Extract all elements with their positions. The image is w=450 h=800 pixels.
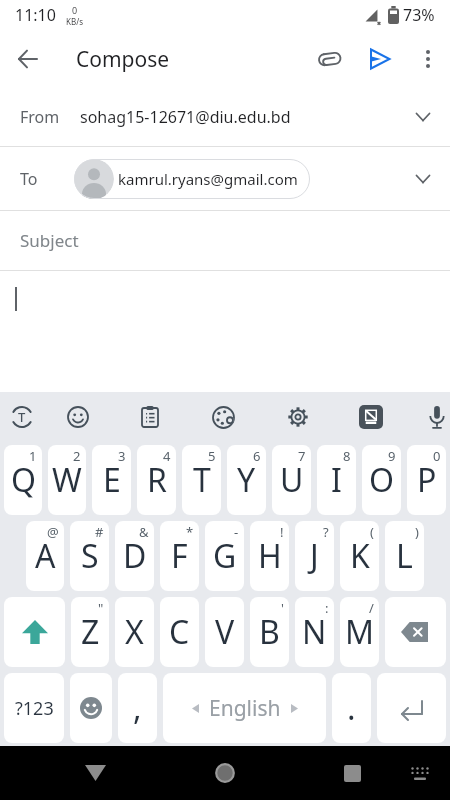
button[interactable]: I (317, 445, 356, 515)
staticText: " (98, 599, 104, 617)
button[interactable] (284, 403, 312, 431)
button[interactable] (70, 673, 112, 743)
button[interactable] (306, 35, 354, 83)
button[interactable]: S (70, 521, 109, 591)
staticText: 8 (343, 447, 351, 465)
staticText: @ (47, 523, 59, 541)
button[interactable] (423, 403, 450, 431)
button[interactable]: X (115, 597, 154, 667)
staticText: Subject (20, 229, 79, 252)
button[interactable]: Q (4, 445, 42, 515)
button[interactable]: F (160, 521, 199, 591)
button[interactable]: Y (227, 445, 266, 515)
staticText: 7 (298, 447, 306, 465)
staticText: kamrul.ryans@gmail.com (118, 169, 298, 189)
button[interactable]: P (407, 445, 446, 515)
button[interactable] (0, 31, 56, 87)
staticText: . (347, 686, 356, 730)
button[interactable]: English (163, 673, 326, 743)
staticText: , (133, 686, 142, 730)
staticText: B (259, 610, 280, 654)
staticText: From (20, 106, 60, 128)
button[interactable]: M (340, 597, 379, 667)
button[interactable] (377, 673, 446, 743)
staticText: P (417, 458, 437, 502)
staticText: 2 (73, 447, 81, 465)
button[interactable] (211, 759, 239, 787)
staticText: English (209, 694, 281, 723)
button[interactable]: D (115, 521, 154, 591)
button[interactable] (406, 37, 450, 81)
staticText: K (350, 534, 370, 578)
staticText: KB/s (66, 16, 83, 27)
button[interactable] (64, 403, 92, 431)
button[interactable] (209, 403, 237, 431)
staticText: U (280, 458, 304, 502)
button[interactable] (385, 597, 446, 667)
staticText: C (169, 610, 190, 654)
staticText: 1 (29, 447, 37, 465)
staticText: T (18, 408, 26, 426)
button[interactable]: W (48, 445, 86, 515)
staticText: To (20, 168, 38, 190)
button[interactable]: kamrul.ryans@gmail.com (74, 159, 310, 199)
staticText: M (345, 610, 375, 654)
button[interactable]: V (205, 597, 244, 667)
button[interactable]: Z (71, 597, 109, 667)
button[interactable] (4, 597, 65, 667)
staticText: R (147, 458, 167, 502)
button[interactable] (81, 759, 109, 787)
button[interactable]: N (295, 597, 334, 667)
staticText: 4 (163, 447, 171, 465)
button[interactable]: To (0, 147, 450, 210)
staticText: - (234, 523, 239, 541)
button[interactable]: C (160, 597, 199, 667)
staticText: ) (415, 523, 419, 541)
button[interactable]: T (182, 445, 221, 515)
button[interactable]: J (295, 521, 334, 591)
staticText: 0 (72, 4, 78, 16)
staticText: Y (237, 458, 256, 502)
staticText: E (103, 458, 121, 502)
staticText: X (125, 610, 144, 654)
staticText: 3 (118, 447, 126, 465)
staticText: D (123, 534, 147, 578)
button[interactable] (338, 759, 366, 787)
button[interactable]: Subject (0, 211, 450, 270)
staticText: * (186, 523, 194, 541)
staticText: ?123 (15, 696, 54, 721)
staticText: L (396, 534, 413, 578)
button[interactable]: H (250, 521, 289, 591)
button[interactable]: R (137, 445, 176, 515)
staticText: & (139, 523, 149, 541)
button[interactable]: B (250, 597, 289, 667)
button[interactable]: L (385, 521, 424, 591)
button[interactable]: ?123 (4, 673, 64, 743)
button[interactable] (136, 403, 164, 431)
staticText: H (258, 534, 282, 578)
staticText: 0 (433, 447, 441, 465)
staticText: sohag15-12671@diu.edu.bd (80, 106, 291, 128)
staticText: Q (11, 458, 36, 502)
staticText: T (193, 458, 211, 502)
staticText: V (215, 610, 235, 654)
button[interactable]: U (272, 445, 311, 515)
button[interactable]: O (362, 445, 401, 515)
staticText: : (325, 599, 329, 617)
button[interactable] (354, 33, 406, 85)
button[interactable]: . (332, 673, 371, 743)
button[interactable]: T (8, 403, 36, 431)
staticText: Z (81, 610, 100, 654)
staticText: 73% (403, 4, 435, 26)
button[interactable]: From (0, 88, 450, 146)
button[interactable]: G (205, 521, 244, 591)
staticText: ! (280, 523, 284, 541)
button[interactable]: E (92, 445, 131, 515)
button[interactable]: K (340, 521, 379, 591)
button[interactable] (357, 403, 385, 431)
staticText: ' (281, 599, 284, 617)
button[interactable] (406, 759, 434, 787)
button[interactable]: , (118, 673, 157, 743)
button[interactable]: A (26, 521, 64, 591)
staticText: A (35, 534, 56, 578)
